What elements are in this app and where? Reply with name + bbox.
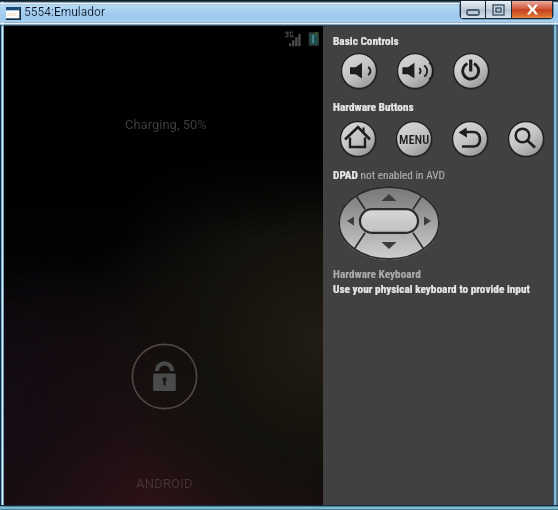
staticText: ANDROID [136, 476, 193, 491]
staticText: 5554:Emulador [24, 5, 105, 19]
button[interactable]: Volume up [396, 52, 434, 90]
button[interactable]: MENU [395, 120, 433, 158]
staticText: Hardware Keyboard [333, 268, 421, 281]
button[interactable]: Unlock [131, 343, 198, 410]
staticText: DPAD [333, 169, 358, 182]
button[interactable]: Volume down [340, 52, 378, 90]
button[interactable]: Maximize [486, 1, 511, 18]
staticText: Hardware Buttons [333, 101, 414, 114]
staticText: Use your physical keyboard to provide in… [333, 283, 530, 296]
staticText: MENU [399, 132, 430, 147]
button[interactable]: Close [512, 1, 552, 18]
staticText: Charging, 50% [125, 117, 207, 132]
button[interactable]: Minimize [461, 1, 485, 18]
staticText: Basic Controls [333, 35, 399, 48]
staticText: not enabled in AVD [358, 169, 445, 182]
button[interactable]: Power [452, 52, 490, 90]
button[interactable]: Search [507, 120, 545, 158]
button[interactable]: Home [339, 120, 377, 158]
button[interactable]: Back [451, 120, 489, 158]
